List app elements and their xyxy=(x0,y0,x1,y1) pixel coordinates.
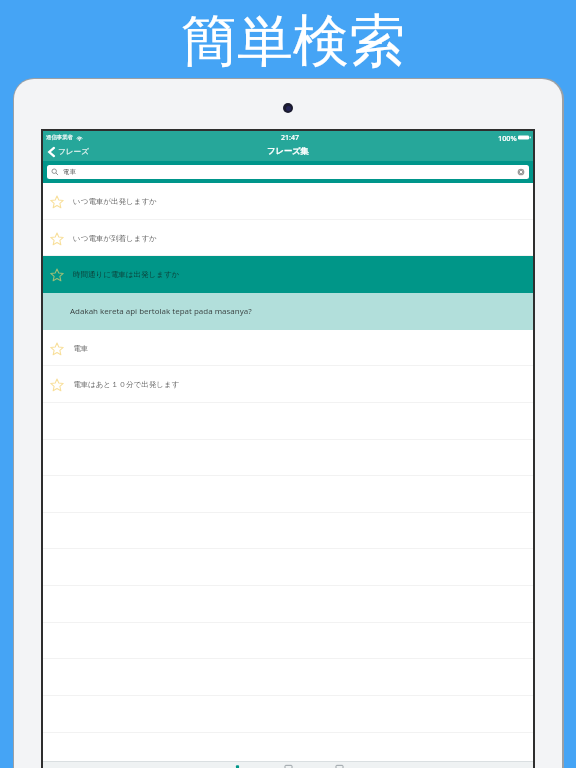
staticText: 簡単検索 xyxy=(181,6,405,77)
staticText: フレーズ集 xyxy=(267,146,309,156)
staticText: Adakah kereta api bertolak tepat pada ma… xyxy=(70,306,252,317)
staticText: 時間通りに電車は出発しますか xyxy=(73,270,180,279)
button[interactable]: Settings xyxy=(335,761,344,768)
staticText: 電車 xyxy=(73,344,88,353)
button[interactable]: 電車 xyxy=(47,165,529,179)
staticText: 電車 xyxy=(63,168,76,176)
button[interactable]: Categories xyxy=(284,761,293,768)
button[interactable]: いつ電車が到着しますか xyxy=(43,220,533,257)
staticText: いつ電車が出発しますか xyxy=(73,197,157,206)
staticText: 100% xyxy=(498,133,517,143)
button[interactable]: いつ電車が出発しますか xyxy=(43,183,533,220)
button[interactable]: 電車はあと１０分で出発します xyxy=(43,366,533,403)
button[interactable]: Adakah kereta api bertolak tepat pada ma… xyxy=(43,293,533,330)
other: Back xyxy=(48,146,55,158)
staticText: 電車はあと１０分で出発します xyxy=(73,380,180,389)
button[interactable]: 時間通りに電車は出発しますか xyxy=(43,256,533,293)
staticText: 通信事業者 xyxy=(46,134,73,141)
button[interactable]: Phrases xyxy=(233,761,242,768)
staticText: いつ電車が到着しますか xyxy=(73,234,157,243)
button[interactable]: 電車 xyxy=(43,330,533,367)
button[interactable]: Clear xyxy=(517,168,525,176)
staticText: フレーズ xyxy=(58,147,89,157)
staticText: 21:47 xyxy=(281,133,299,143)
button[interactable]: Back xyxy=(43,143,97,160)
